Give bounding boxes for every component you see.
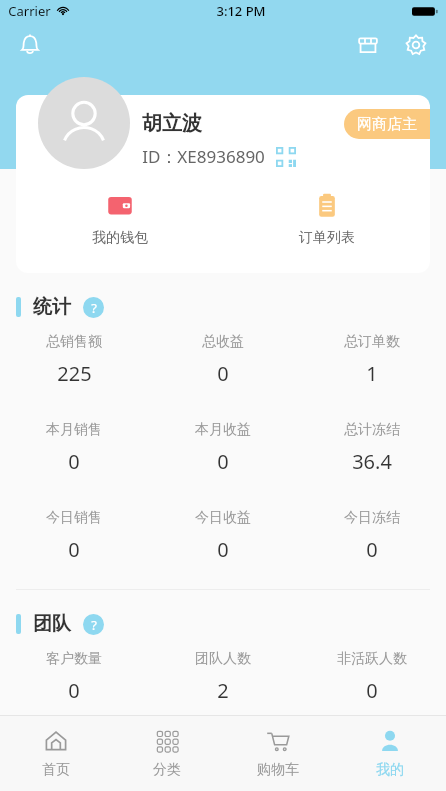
button[interactable]: 首页 bbox=[0, 716, 111, 791]
button[interactable]: 订单列表 bbox=[223, 187, 430, 251]
staticText: 0 bbox=[217, 536, 229, 563]
button[interactable]: 网商店主 bbox=[344, 109, 430, 139]
button[interactable]: Notifications bbox=[10, 25, 50, 65]
staticText: ? bbox=[91, 299, 97, 317]
staticText: 1 bbox=[366, 360, 378, 387]
button[interactable]: 今日收益 bbox=[148, 509, 297, 563]
staticText: ID：XE8936890 bbox=[142, 145, 265, 168]
staticText: 225 bbox=[57, 360, 92, 387]
staticText: 0 bbox=[68, 448, 80, 475]
button[interactable]: 本月销售 bbox=[0, 421, 148, 475]
staticText: 统计 bbox=[33, 295, 71, 319]
button[interactable]: 团队人数 bbox=[148, 650, 297, 704]
button[interactable]: 本月收益 bbox=[148, 421, 297, 475]
staticText: 订单列表 bbox=[299, 229, 355, 247]
staticText: 本月销售 bbox=[46, 421, 102, 439]
button[interactable]: Settings bbox=[396, 25, 436, 65]
staticText: 客户数量 bbox=[46, 650, 102, 668]
staticText: 网商店主 bbox=[357, 115, 417, 134]
staticText: Carrier bbox=[8, 2, 51, 20]
button[interactable]: Avatar bbox=[38, 77, 130, 169]
staticText: ? bbox=[91, 616, 97, 634]
staticText: 3:12 PM bbox=[216, 2, 266, 20]
staticText: 分类 bbox=[153, 761, 181, 779]
staticText: 总销售额 bbox=[46, 333, 102, 351]
staticText: 团队 bbox=[33, 612, 71, 636]
button[interactable]: Settings bbox=[396, 25, 436, 65]
button[interactable]: 总收益 bbox=[148, 333, 297, 387]
staticText: 36.4 bbox=[352, 448, 392, 475]
button[interactable]: 购物车 bbox=[222, 716, 334, 791]
button[interactable]: 我的 bbox=[334, 716, 446, 791]
staticText: 我的 bbox=[376, 761, 404, 779]
staticText: 今日收益 bbox=[195, 509, 251, 527]
button[interactable]: 今日销售 bbox=[0, 509, 148, 563]
button[interactable]: Shop bbox=[348, 25, 388, 65]
button[interactable]: 总计冻结 bbox=[297, 421, 446, 475]
staticText: 今日冻结 bbox=[344, 509, 400, 527]
button[interactable]: 客户数量 bbox=[0, 650, 148, 704]
staticText: 总收益 bbox=[202, 333, 244, 351]
button[interactable]: Help bbox=[83, 297, 104, 318]
staticText: 团队人数 bbox=[195, 650, 251, 668]
staticText: 胡立波 bbox=[142, 111, 202, 136]
staticText: 本月收益 bbox=[195, 421, 251, 439]
staticText: 2 bbox=[217, 677, 229, 704]
staticText: 今日销售 bbox=[46, 509, 102, 527]
staticText: 首页 bbox=[42, 761, 70, 779]
staticText: Carrier bbox=[8, 2, 51, 20]
staticText: 购物车 bbox=[257, 761, 299, 779]
staticText: 0 bbox=[217, 360, 229, 387]
staticText: 3:12 PM bbox=[216, 2, 266, 20]
staticText: 0 bbox=[68, 536, 80, 563]
button[interactable]: Shop bbox=[348, 25, 388, 65]
staticText: 总计冻结 bbox=[344, 421, 400, 439]
button[interactable]: QR code bbox=[275, 146, 297, 168]
button[interactable]: Notifications bbox=[10, 25, 50, 65]
button[interactable]: 非活跃人数 bbox=[297, 650, 446, 704]
staticText: 0 bbox=[217, 448, 229, 475]
staticText: 0 bbox=[366, 536, 378, 563]
button[interactable]: 今日冻结 bbox=[297, 509, 446, 563]
button[interactable]: Help bbox=[83, 614, 104, 635]
button[interactable]: 总销售额 bbox=[0, 333, 148, 387]
staticText: 0 bbox=[68, 677, 80, 704]
staticText: 0 bbox=[366, 677, 378, 704]
staticText: 非活跃人数 bbox=[337, 650, 407, 668]
staticText: 我的钱包 bbox=[92, 229, 148, 247]
staticText: 总订单数 bbox=[344, 333, 400, 351]
button[interactable]: 总订单数 bbox=[297, 333, 446, 387]
button[interactable]: 我的钱包 bbox=[16, 187, 223, 251]
button[interactable]: 分类 bbox=[111, 716, 222, 791]
